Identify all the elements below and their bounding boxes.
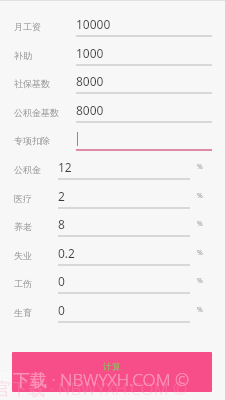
button[interactable]: 社保基数 — [0, 69, 225, 98]
staticText: % — [197, 305, 203, 315]
staticText: 专项扣除 — [14, 135, 50, 146]
staticText: % — [197, 248, 203, 258]
button[interactable]: 公积金基数 — [0, 98, 225, 127]
staticText: 社保基数 — [14, 78, 50, 89]
button[interactable]: 生育 — [0, 298, 225, 327]
staticText: 0 — [58, 302, 65, 318]
staticText: 2 — [58, 188, 65, 204]
staticText: 0 — [58, 273, 65, 289]
staticText: % — [197, 276, 203, 286]
staticText: 医疗 — [14, 193, 32, 204]
staticText: 官下载 · NBWYXH.COM © — [0, 377, 188, 400]
staticText: 失业 — [14, 250, 32, 261]
staticText: 公积金 — [14, 164, 41, 175]
button[interactable]: 失业 — [0, 241, 225, 270]
button[interactable]: 月工资 — [0, 12, 225, 41]
button[interactable]: 专项扣除 — [0, 126, 225, 155]
staticText: 公积金基数 — [14, 107, 59, 118]
staticText: 8 — [58, 216, 65, 232]
staticText: 补助 — [14, 50, 32, 61]
staticText: % — [197, 191, 203, 201]
staticText: 8000 — [76, 102, 104, 118]
button[interactable]: 补助 — [0, 41, 225, 70]
staticText: 养老 — [14, 221, 32, 232]
staticText: 1000 — [76, 45, 104, 61]
staticText: 官下载 · NBWYXH.COM © — [0, 368, 190, 391]
button[interactable]: 工伤 — [0, 269, 225, 298]
staticText: 12 — [58, 159, 72, 175]
button[interactable]: 医疗 — [0, 184, 225, 213]
staticText: 0.2 — [58, 245, 75, 261]
staticText: 10000 — [76, 16, 111, 32]
staticText: % — [197, 219, 203, 229]
staticText: % — [197, 162, 203, 172]
button[interactable]: 计算 — [12, 352, 212, 392]
staticText: 月工资 — [14, 21, 41, 32]
staticText: 工伤 — [14, 278, 32, 289]
staticText: 计算 — [103, 361, 121, 372]
button[interactable]: 养老 — [0, 212, 225, 241]
staticText: 8000 — [76, 73, 104, 89]
button[interactable]: 公积金 — [0, 155, 225, 184]
staticText: 生育 — [14, 307, 32, 318]
